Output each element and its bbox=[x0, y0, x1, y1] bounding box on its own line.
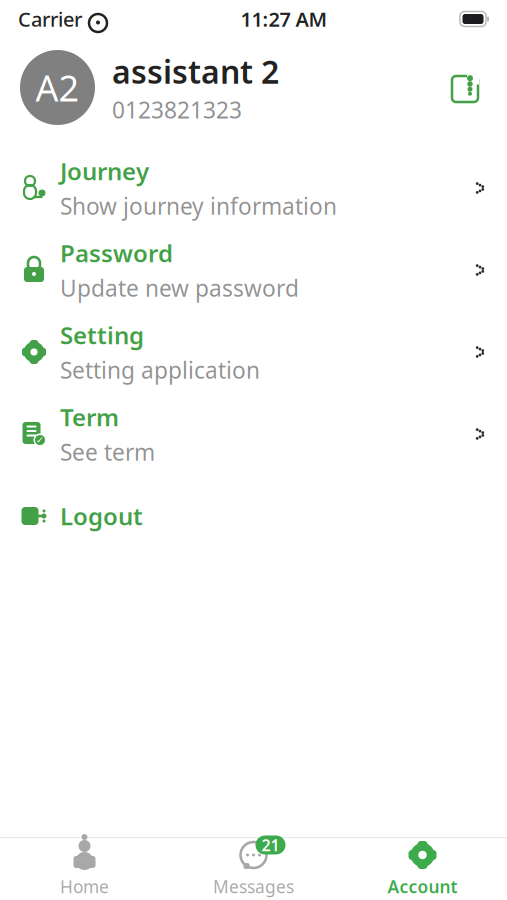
staticText: Setting bbox=[60, 319, 144, 351]
button[interactable]: Setting bbox=[0, 311, 507, 393]
button[interactable]: Edit profile bbox=[443, 65, 487, 109]
button[interactable]: Home bbox=[0, 838, 169, 900]
staticText: Messages bbox=[213, 875, 294, 898]
staticText: Setting application bbox=[60, 355, 260, 385]
button[interactable]: Journey bbox=[0, 147, 507, 229]
staticText: Account bbox=[387, 875, 457, 898]
button[interactable]: Password bbox=[0, 229, 507, 311]
staticText: Update new password bbox=[60, 273, 299, 303]
staticText: Carrier bbox=[18, 6, 82, 32]
staticText: assistant 2 bbox=[112, 50, 279, 93]
staticText: ✓ bbox=[36, 435, 44, 445]
staticText: Journey bbox=[60, 155, 149, 187]
staticText: Password bbox=[60, 237, 173, 269]
staticText: 21 bbox=[261, 834, 279, 856]
button[interactable]: 21 bbox=[169, 838, 338, 900]
staticText: See term bbox=[60, 437, 155, 467]
button[interactable]: Logout bbox=[0, 475, 507, 557]
staticText: Logout bbox=[60, 500, 143, 532]
button[interactable]: ✓ bbox=[0, 393, 507, 475]
staticText: 11:27 AM bbox=[240, 6, 327, 32]
staticText: 0123821323 bbox=[112, 95, 242, 125]
staticText: Home bbox=[60, 875, 109, 898]
staticText: A2 bbox=[35, 64, 79, 111]
staticText: Show journey information bbox=[60, 191, 337, 221]
staticText: Term bbox=[60, 401, 119, 433]
button[interactable]: Account bbox=[338, 838, 507, 900]
